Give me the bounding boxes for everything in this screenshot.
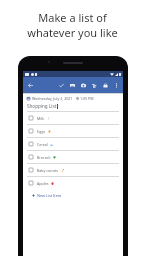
staticText: Tr	[92, 83, 97, 89]
staticText: Make a list of	[38, 10, 107, 25]
button[interactable]: Broccoli	[27, 150, 119, 163]
button[interactable]: Camera	[78, 80, 89, 91]
button[interactable]: Insert image	[67, 80, 78, 91]
button[interactable]: New List Item	[27, 193, 119, 198]
staticText: Broccoli	[37, 155, 51, 160]
button[interactable]: Cereal	[27, 137, 119, 150]
staticText: Eggs	[37, 129, 46, 134]
button[interactable]: More options	[111, 80, 122, 91]
button[interactable]: Text format	[89, 80, 100, 91]
staticText: New List Item	[37, 193, 62, 198]
staticText: Wednesday, July 2, 2021	[32, 96, 73, 101]
button[interactable]: Back	[25, 80, 36, 91]
staticText: whatever you like	[27, 25, 118, 40]
button[interactable]: Apples	[27, 176, 119, 189]
button[interactable]: Baby carrots	[27, 163, 119, 176]
button[interactable]: Done	[56, 80, 67, 91]
button[interactable]: Lock	[100, 80, 111, 91]
button[interactable]: Eggs	[27, 124, 119, 137]
staticText: 1:05 PM	[80, 96, 94, 101]
staticText: Apples	[37, 181, 49, 186]
staticText: Shopping List	[27, 103, 57, 109]
button[interactable]: Milk	[27, 111, 119, 124]
staticText: Baby carrots	[37, 168, 59, 173]
staticText: Cereal	[37, 142, 48, 147]
staticText: Milk	[37, 116, 45, 121]
